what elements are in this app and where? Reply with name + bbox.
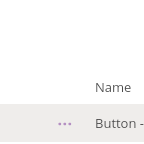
button[interactable]: Name [88,72,140,98]
staticText: Button - [95,114,144,132]
button[interactable]: More options [50,108,80,138]
staticText: Name [95,78,132,96]
button[interactable] [0,104,144,142]
